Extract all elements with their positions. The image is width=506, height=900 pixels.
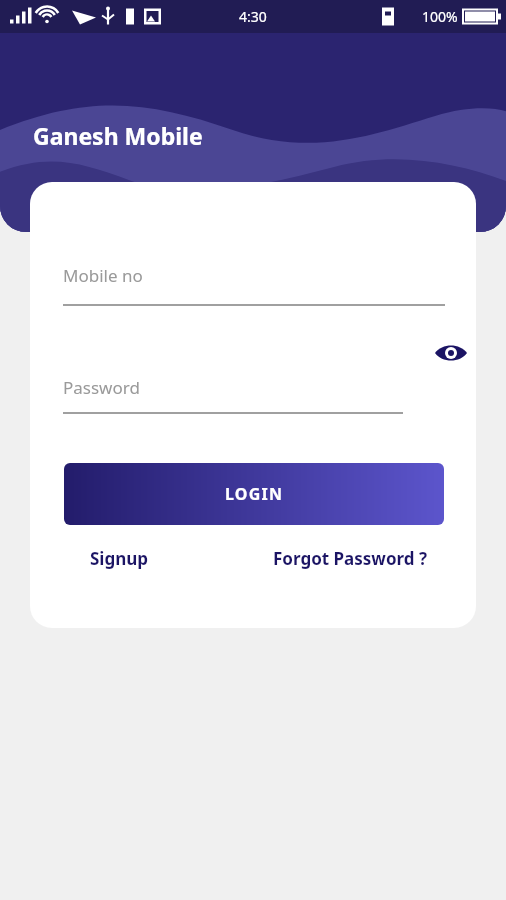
staticText: Mobile no xyxy=(63,264,143,287)
button[interactable]: Show password xyxy=(428,336,474,370)
button[interactable]: Mobile no xyxy=(63,264,445,306)
staticText: LOGIN xyxy=(225,483,284,505)
staticText: Password xyxy=(63,376,140,399)
staticText: Signup xyxy=(90,547,149,570)
staticText: 100% xyxy=(422,7,458,26)
staticText: Ganesh Mobile xyxy=(33,120,203,151)
staticText: Forgot Password ? xyxy=(273,547,428,570)
staticText: 4:30 xyxy=(239,7,267,26)
button[interactable]: Password xyxy=(63,376,403,414)
button[interactable]: Signup xyxy=(84,541,155,576)
button[interactable]: Forgot Password ? xyxy=(267,541,434,576)
button[interactable]: LOGIN xyxy=(64,463,444,525)
